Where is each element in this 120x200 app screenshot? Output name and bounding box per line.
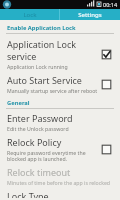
staticText: Require password everytime the blocked a… [7,149,86,162]
button[interactable]: Relock Policy [101,144,112,155]
staticText: Auto Start Service [7,74,82,86]
button[interactable]: Settings [60,9,120,20]
staticText: Application Lock service [7,38,98,62]
staticText: Edit the Unlock password [7,125,69,132]
button[interactable]: Application Lock service [101,49,112,60]
staticText: Relock Policy [7,136,62,148]
button[interactable]: Auto Start Service [101,79,112,90]
button[interactable]: Application Lock service [6,36,116,72]
button[interactable]: Lock Type [6,188,116,200]
staticText: Lock Type [7,190,49,198]
staticText: Settings [78,11,102,19]
staticText: Enter Password [7,112,73,124]
button[interactable]: Relock Policy [6,134,116,164]
button[interactable]: Lock [0,9,59,20]
button[interactable]: Auto Start Service [6,72,116,96]
staticText: 00:14 [103,1,118,8]
button[interactable]: Relock timeout [6,164,116,188]
staticText: Minutes of time before the app is relock… [7,179,111,186]
staticText: Application Lock running [7,63,68,70]
staticText: Lock [23,11,37,19]
staticText: Relock timeout [7,166,71,178]
staticText: Manually startup service after reboot [7,87,98,94]
staticText: Enable Application Lock [7,24,76,32]
button[interactable]: Enter Password [6,110,116,134]
staticText: General [7,99,30,107]
